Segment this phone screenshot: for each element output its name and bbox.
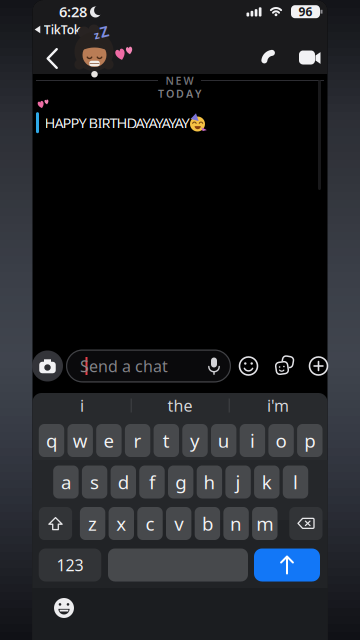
button[interactable]: f [139, 465, 165, 498]
button[interactable]: q [39, 424, 64, 457]
staticText: 6:28 [59, 2, 87, 21]
button[interactable] [39, 507, 72, 540]
button[interactable] [289, 507, 322, 540]
button[interactable]: w [67, 424, 93, 457]
staticText: m [256, 511, 273, 536]
staticText: d [118, 470, 129, 494]
staticText: x [116, 511, 126, 536]
staticText: i [250, 428, 255, 453]
button[interactable]: HAPPY BIRTHDAYAYAYAY [36, 112, 208, 133]
button[interactable]: u [211, 424, 236, 457]
staticText: z [88, 511, 97, 536]
staticText: 123 [56, 554, 83, 576]
staticText: p [304, 428, 315, 453]
button[interactable] [308, 356, 328, 376]
button[interactable] [254, 548, 320, 581]
staticText: o [276, 428, 287, 453]
button[interactable] [32, 350, 63, 381]
button[interactable]: o [268, 424, 294, 457]
staticText: e [103, 428, 114, 453]
button[interactable]: i'm [230, 395, 326, 415]
button[interactable]: p [297, 424, 322, 457]
button[interactable]: i [240, 424, 265, 457]
button[interactable]: c [137, 507, 163, 540]
button[interactable]: z [80, 507, 105, 540]
button[interactable]: TikTok [31, 23, 83, 35]
button[interactable]: e [96, 424, 122, 457]
staticText: 96 [298, 4, 312, 20]
staticText: b [202, 511, 213, 536]
button[interactable]: d [111, 465, 136, 498]
button[interactable]: r [125, 424, 150, 457]
staticText: the [167, 395, 192, 416]
button[interactable]: s [82, 465, 107, 498]
staticText: v [174, 511, 183, 536]
button[interactable]: t [154, 424, 179, 457]
button[interactable]: j [225, 465, 251, 498]
staticText: Z [100, 22, 108, 41]
button[interactable]: k [254, 465, 279, 498]
staticText: k [262, 470, 272, 494]
staticText: t [163, 428, 170, 453]
staticText: w [73, 428, 88, 453]
button[interactable]: v [166, 507, 191, 540]
button[interactable]: b [195, 507, 220, 540]
button[interactable] [260, 48, 279, 67]
button[interactable] [53, 597, 74, 618]
staticText: h [203, 470, 215, 494]
staticText: l [293, 470, 298, 494]
button[interactable]: z [73, 29, 117, 77]
staticText: s [90, 470, 99, 494]
button[interactable] [46, 48, 58, 69]
button[interactable] [272, 355, 294, 377]
staticText: q [46, 428, 57, 453]
button[interactable] [108, 548, 248, 581]
button[interactable]: Send a chat [66, 349, 231, 382]
staticText: Send a chat [80, 355, 168, 377]
staticText: j [236, 470, 241, 494]
button[interactable]: m [252, 507, 277, 540]
staticText: i'm [267, 395, 289, 416]
staticText: a [61, 470, 71, 494]
button[interactable]: i [34, 395, 130, 415]
button[interactable]: the [132, 395, 228, 415]
button[interactable] [238, 356, 258, 376]
button[interactable]: n [223, 507, 249, 540]
staticText: N E W [165, 73, 193, 88]
staticText: r [134, 428, 142, 453]
staticText: n [230, 511, 242, 536]
staticText: g [175, 470, 186, 494]
staticText: u [218, 428, 230, 453]
button[interactable]: g [168, 465, 193, 498]
staticText: z [94, 28, 99, 42]
staticText: y [190, 428, 200, 453]
button[interactable] [299, 50, 322, 65]
staticText: HAPPY BIRTHDAYAYAYAY [44, 113, 189, 132]
button[interactable]: x [109, 507, 134, 540]
button[interactable]: l [283, 465, 308, 498]
staticText: i [80, 395, 84, 416]
staticText: TikTok [44, 21, 81, 37]
button[interactable]: a [53, 465, 79, 498]
staticText: T O D A Y [158, 86, 201, 101]
staticText: f [149, 470, 155, 494]
staticText: c [145, 511, 154, 536]
button[interactable]: y [182, 424, 208, 457]
button[interactable]: 123 [39, 548, 101, 581]
button[interactable]: h [197, 465, 222, 498]
